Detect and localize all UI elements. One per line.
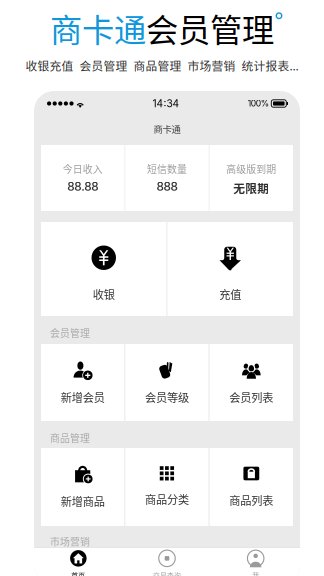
button[interactable]: 会员列表	[210, 344, 293, 421]
staticText: 100%	[248, 98, 269, 109]
staticText: 商卡通	[153, 122, 180, 135]
staticText: 商卡通	[50, 5, 146, 51]
staticText: 888	[156, 179, 177, 193]
staticText: 会员管理	[146, 5, 274, 51]
staticText: 无限期	[233, 179, 269, 196]
button[interactable]: 首页	[34, 548, 123, 576]
button[interactable]: 我	[211, 548, 300, 576]
staticText: 我	[252, 570, 259, 576]
staticText: 收银充值 会员管理 商品管理 市场营销 统计报表...	[25, 57, 298, 74]
staticText: 商品分类	[145, 491, 189, 507]
staticText: 88.88	[67, 179, 98, 193]
staticText: 充值	[219, 286, 241, 302]
button[interactable]: 会员等级	[125, 344, 209, 421]
staticText: 会员等级	[145, 389, 189, 405]
staticText: 今日收入	[63, 161, 103, 176]
button[interactable]: 新增商品	[41, 448, 124, 526]
staticText: 新增会员	[61, 389, 105, 405]
staticText: 短信数量	[147, 161, 187, 176]
staticText: 市场营销	[50, 534, 90, 548]
staticText: 高级版到期	[226, 161, 276, 176]
button[interactable]: 充值	[167, 222, 293, 316]
staticText: 收银	[93, 286, 115, 302]
staticText: 新增商品	[61, 493, 105, 509]
button[interactable]: 交易查询	[123, 548, 211, 576]
staticText: 交易查询	[153, 570, 181, 576]
button[interactable]: 新增会员	[41, 344, 124, 421]
staticText: 会员管理	[50, 325, 90, 340]
button[interactable]: 收银	[41, 222, 166, 316]
staticText: 商品管理	[50, 430, 90, 445]
staticText: 14:34	[152, 97, 179, 110]
staticText: 首页	[71, 570, 85, 576]
staticText: 商品列表	[229, 492, 273, 508]
button[interactable]: 商品列表	[210, 448, 293, 526]
button[interactable]: 商品分类	[125, 448, 209, 526]
staticText: 会员列表	[229, 389, 273, 405]
